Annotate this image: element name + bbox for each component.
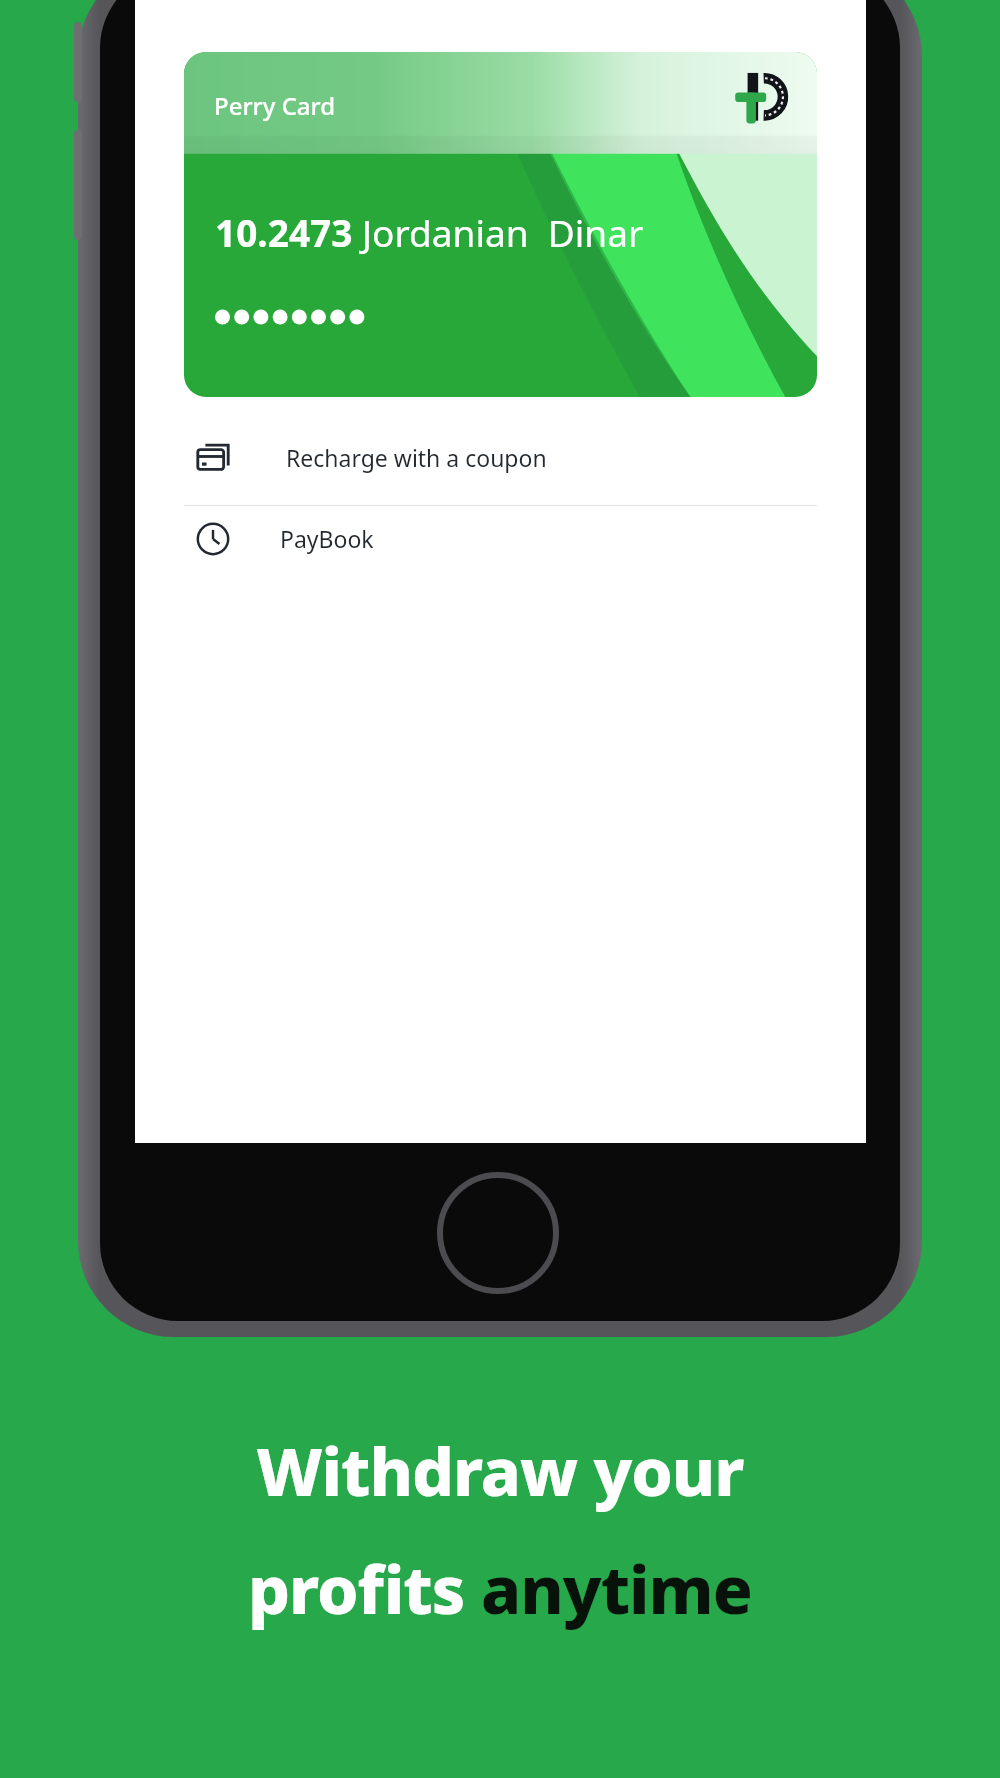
staticText: Jordanian Dinar [362,207,644,257]
staticText: profits [248,1543,481,1633]
staticText: Withdraw your [256,1425,744,1515]
staticText: Recharge with a coupon [286,442,547,473]
button[interactable]: PayBook [184,491,817,586]
staticText: Perry Card [214,89,336,122]
other: PayBook [194,520,232,558]
other: Recharge with a coupon [194,439,232,477]
other: Perry logo [729,72,791,134]
staticText: anytime [481,1543,752,1633]
staticText: 10.2473 [215,207,353,257]
staticText: PayBook [280,523,374,554]
button[interactable]: Perry Card [184,52,817,397]
button[interactable]: Recharge with a coupon [184,410,817,505]
